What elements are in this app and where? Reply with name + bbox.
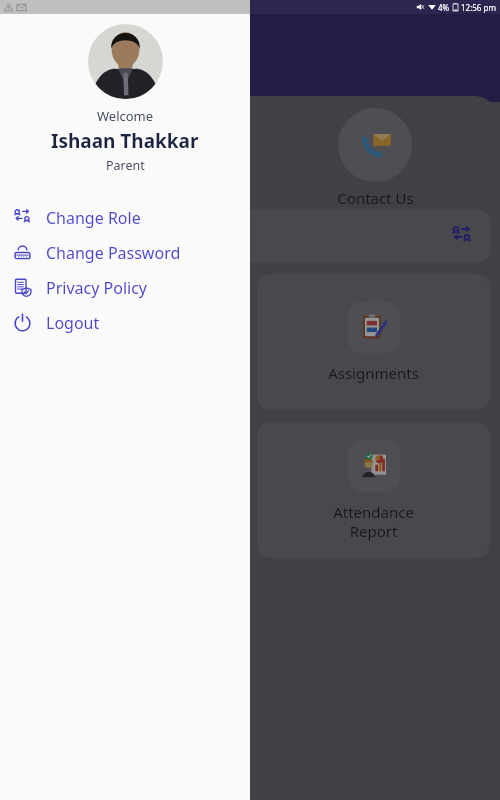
button[interactable]: Logout	[0, 305, 250, 340]
staticText: Attendance Report	[333, 502, 414, 541]
other: Change Role	[450, 224, 474, 248]
staticText: Change Password	[46, 242, 181, 264]
staticText: 12:56 pm	[461, 2, 496, 13]
button[interactable]: Time Table	[10, 274, 243, 410]
button[interactable]: Privacy Policy	[0, 270, 250, 305]
staticText: Change Role	[46, 207, 141, 229]
button[interactable]: Calendar	[0, 104, 250, 208]
staticText: Assignments	[328, 363, 419, 383]
staticText: Welcome	[97, 107, 154, 125]
staticText: Ishaan Thakkar	[51, 128, 199, 154]
button[interactable]: Assignments	[257, 274, 490, 410]
staticText: 4%	[438, 2, 450, 13]
staticText: Parent	[106, 157, 145, 174]
button[interactable]: Change Role	[0, 200, 250, 235]
button[interactable]: Contact Us	[250, 104, 500, 208]
button[interactable]: Change Role	[10, 210, 490, 262]
staticText: Privacy Policy	[46, 277, 147, 299]
staticText: Contact Us	[337, 188, 414, 208]
staticText: Logout	[46, 312, 100, 334]
button[interactable]: Change Password	[0, 235, 250, 270]
button[interactable]: Attendance Report	[257, 422, 490, 558]
